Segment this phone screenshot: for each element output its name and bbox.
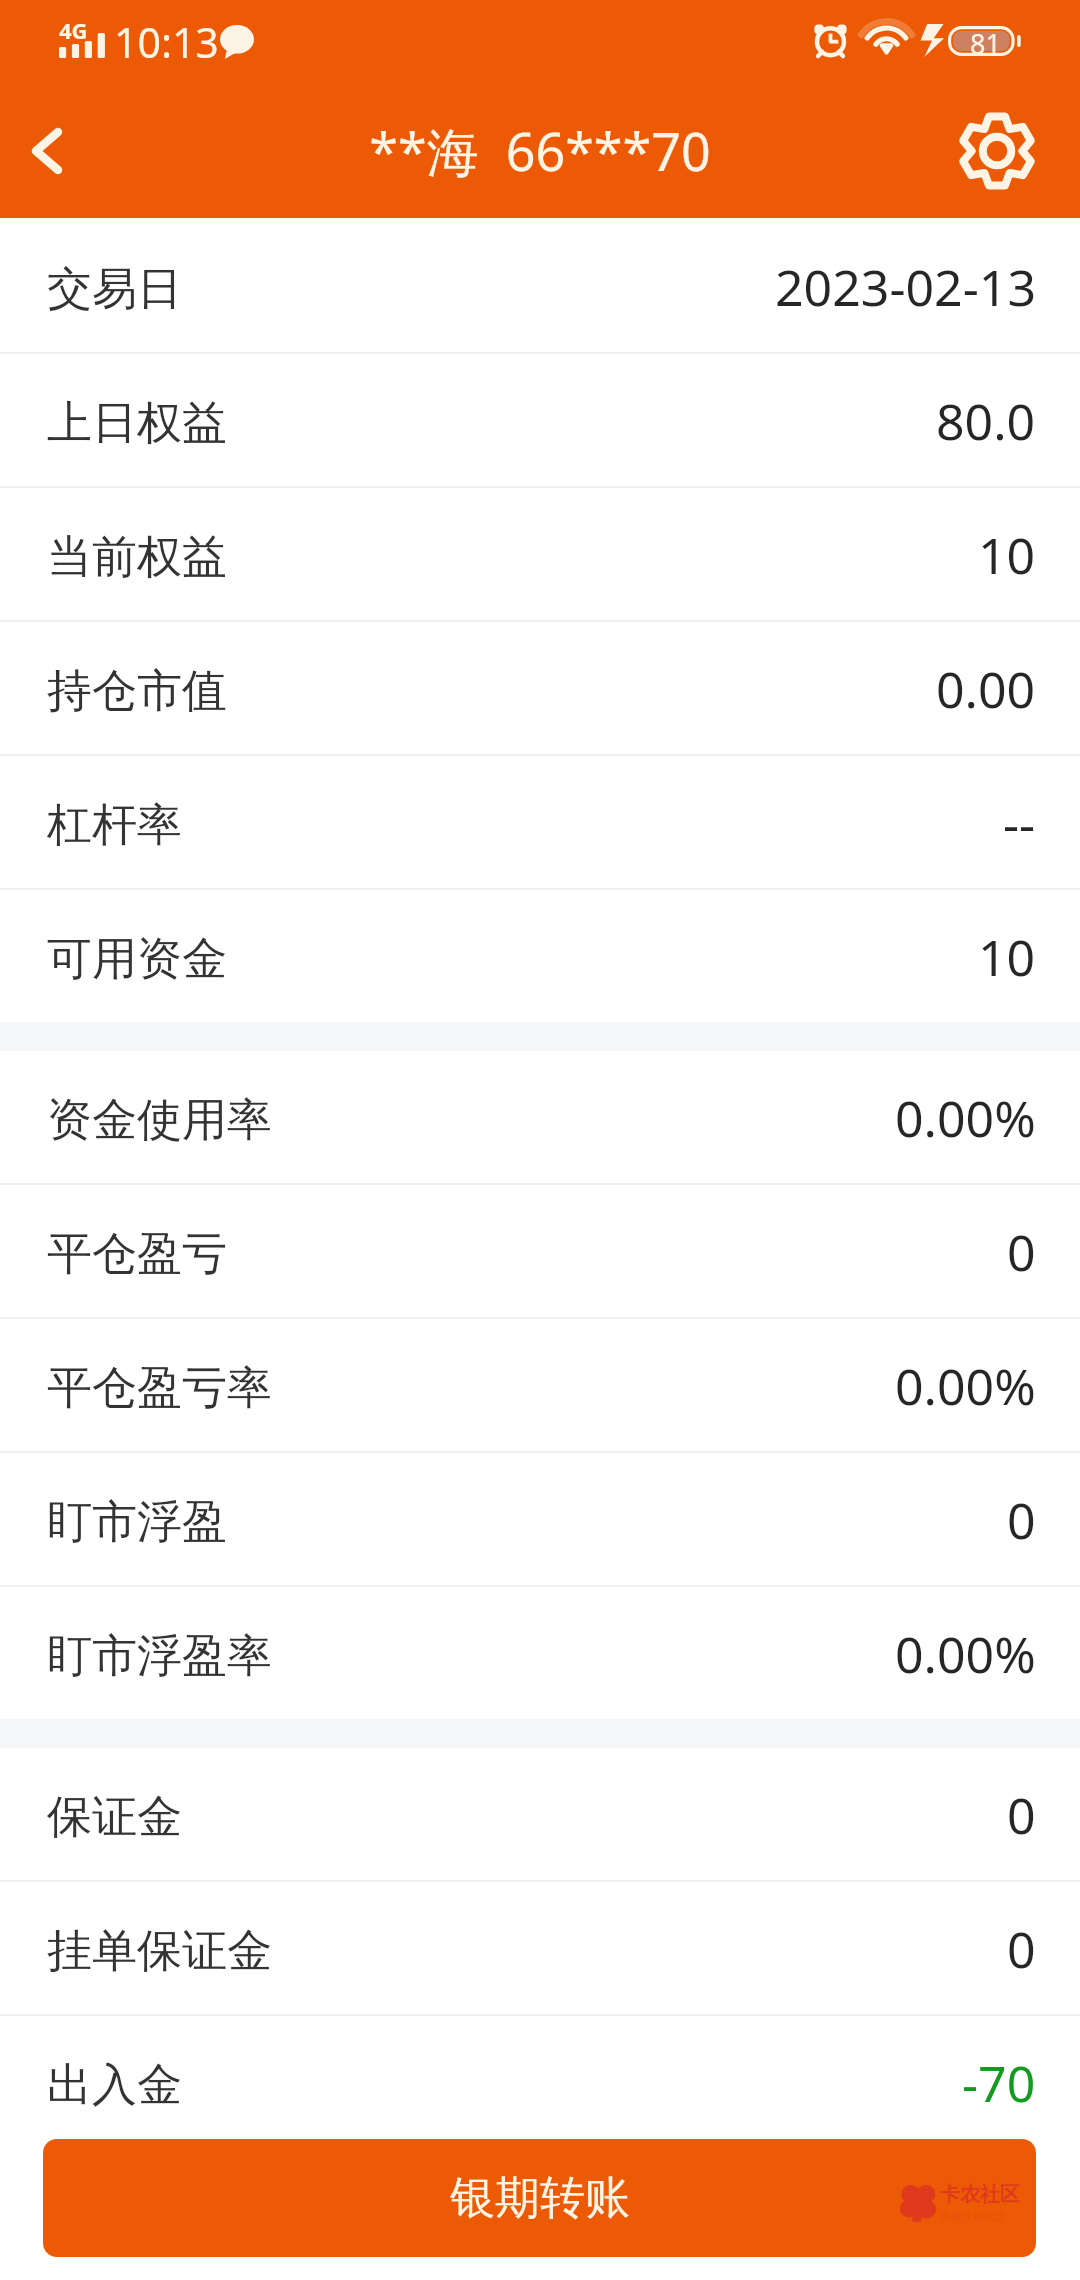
- staticText: 0: [1007, 1218, 1036, 1286]
- button[interactable]: 挂单保证金: [0, 1882, 1080, 2014]
- button[interactable]: 当前权益: [0, 488, 1080, 620]
- staticText: 10: [978, 923, 1036, 991]
- staticText: 可用资金: [47, 931, 227, 988]
- staticText: 挂单保证金: [47, 1923, 272, 1980]
- staticText: 0: [1007, 1915, 1036, 1983]
- staticText: 上日权益: [47, 395, 227, 452]
- staticText: 杠杆率: [47, 797, 182, 854]
- staticText: 81: [970, 25, 1001, 55]
- button[interactable]: 杠杆率: [0, 756, 1080, 888]
- staticText: 银期转账: [450, 2170, 630, 2227]
- staticText: 0.00: [936, 655, 1036, 723]
- button[interactable]: 盯市浮盈率: [0, 1587, 1080, 1719]
- staticText: **海 66***70: [369, 115, 711, 186]
- staticText: --: [1003, 789, 1036, 857]
- staticText: 平仓盈亏: [47, 1226, 227, 1283]
- staticText: 盯市浮盈率: [47, 1628, 272, 1685]
- staticText: 当前权益: [47, 529, 227, 586]
- button[interactable]: 资金使用率: [0, 1051, 1080, 1183]
- button[interactable]: 上日权益: [0, 354, 1080, 486]
- staticText: 0: [1007, 1781, 1036, 1849]
- staticText: 0.00%: [895, 1084, 1036, 1152]
- staticText: 0.00%: [895, 1620, 1036, 1688]
- staticText: 出入金: [47, 2057, 182, 2114]
- staticText: 资金使用率: [47, 1092, 272, 1149]
- button[interactable]: 盯市浮盈: [0, 1453, 1080, 1585]
- button[interactable]: 出入金: [0, 2016, 1080, 2148]
- staticText: 盯市浮盈: [47, 1494, 227, 1551]
- staticText: 2023-02-13: [775, 253, 1036, 321]
- button[interactable]: Settings: [938, 90, 1058, 218]
- button[interactable]: 银期转账: [43, 2139, 1036, 2257]
- staticText: 平仓盈亏率: [47, 1360, 272, 1417]
- staticText: 10:13: [114, 14, 219, 70]
- staticText: 交易日: [47, 261, 182, 318]
- staticText: 10: [978, 521, 1036, 589]
- staticText: 保证金: [47, 1789, 182, 1846]
- staticText: 0.00%: [895, 1352, 1036, 1420]
- staticText: 80.0: [936, 387, 1036, 455]
- staticText: 持仓市值: [47, 663, 227, 720]
- button[interactable]: 持仓市值: [0, 622, 1080, 754]
- button[interactable]: 平仓盈亏率: [0, 1319, 1080, 1451]
- staticText: 0: [1007, 1486, 1036, 1554]
- button[interactable]: 可用资金: [0, 890, 1080, 1022]
- staticText: 卡农社区: [940, 2182, 1020, 2207]
- button[interactable]: 保证金: [0, 1748, 1080, 1880]
- button[interactable]: Back: [0, 90, 96, 218]
- staticText: 4G: [59, 15, 88, 45]
- button[interactable]: 平仓盈亏: [0, 1185, 1080, 1317]
- button[interactable]: 交易日: [0, 220, 1080, 352]
- staticText: -70: [962, 2049, 1036, 2117]
